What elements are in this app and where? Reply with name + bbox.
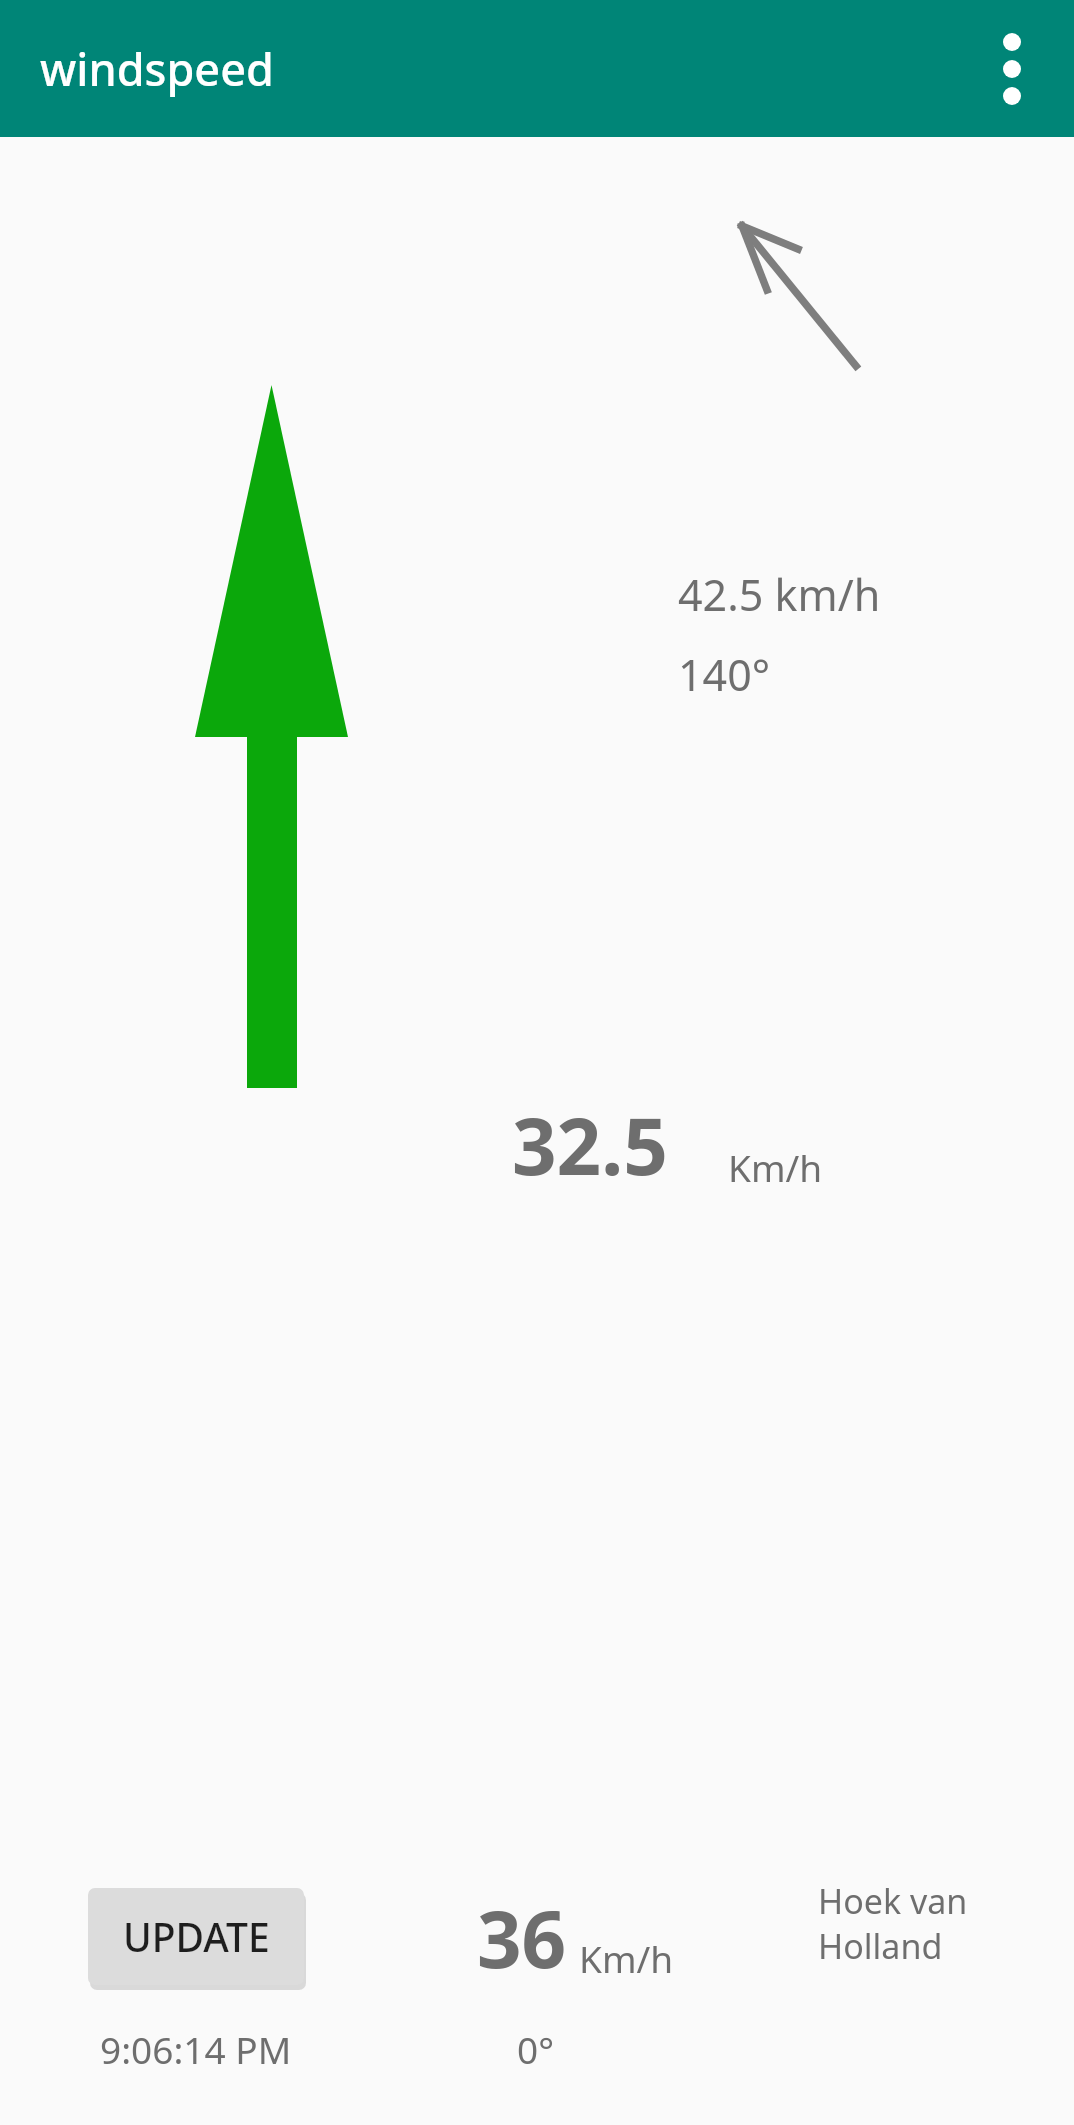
staticText: windspeed bbox=[40, 38, 274, 99]
button[interactable]: UPDATE bbox=[88, 1888, 304, 1985]
staticText: 32.5 bbox=[512, 1092, 668, 1198]
staticText: 9:06:14 PM bbox=[100, 2024, 292, 2074]
staticText: 0° bbox=[517, 2024, 554, 2074]
staticText: UPDATE bbox=[123, 1910, 270, 1963]
staticText: 36 bbox=[477, 1885, 567, 1991]
button[interactable]: More options bbox=[964, 21, 1060, 117]
staticText: Km/h bbox=[728, 1142, 823, 1192]
staticText: Hoek van Holland bbox=[818, 1878, 993, 1969]
staticText: 140° bbox=[678, 645, 771, 704]
staticText: 42.5 km/h bbox=[678, 565, 881, 624]
staticText: Km/h bbox=[579, 1933, 674, 1983]
